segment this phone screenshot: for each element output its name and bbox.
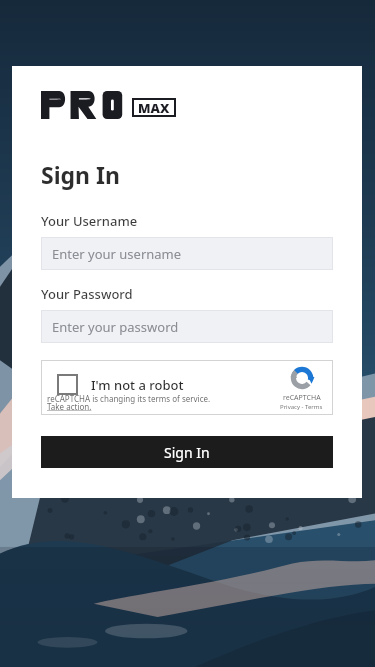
button[interactable]: I'm not a robot checkbox bbox=[57, 374, 78, 395]
button[interactable]: Enter your password bbox=[41, 310, 333, 343]
staticText: Your Username bbox=[41, 212, 138, 230]
staticText: reCAPTCHA bbox=[283, 393, 321, 403]
staticText: I'm not a robot bbox=[91, 376, 184, 394]
staticText: Sign In bbox=[164, 443, 210, 462]
staticText: Enter your password bbox=[52, 318, 179, 336]
staticText: MAX bbox=[138, 99, 170, 117]
staticText: reCAPTCHA is changing its terms of servi… bbox=[47, 393, 211, 404]
staticText: Enter your username bbox=[52, 245, 182, 263]
staticText: Your Password bbox=[41, 285, 133, 303]
button[interactable]: Take action. bbox=[47, 401, 92, 412]
button[interactable]: I'm not a robot checkbox bbox=[41, 360, 333, 415]
button[interactable]: Enter your username bbox=[41, 237, 333, 270]
staticText: Sign In bbox=[41, 159, 120, 190]
button[interactable]: Sign In bbox=[41, 436, 333, 468]
staticText: Privacy - Terms bbox=[280, 403, 323, 411]
